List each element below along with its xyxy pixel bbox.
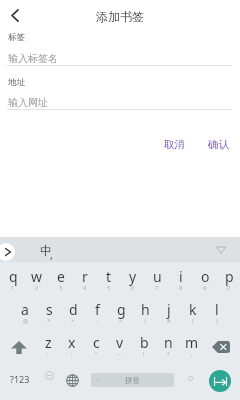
staticText: b: [140, 333, 149, 352]
staticText: x: [68, 333, 76, 352]
staticText: c: [93, 333, 100, 352]
button[interactable]: h: [133, 297, 157, 327]
staticText: 7: [155, 284, 159, 291]
staticText: =: [119, 317, 123, 324]
button[interactable]: 确认: [203, 135, 233, 153]
staticText: r: [82, 267, 88, 286]
staticText: 3: [59, 284, 63, 291]
button[interactable]: b: [132, 330, 156, 360]
button[interactable]: 拼音: [91, 373, 174, 387]
button[interactable]: t: [97, 264, 121, 294]
staticText: 地址: [8, 77, 25, 88]
staticText: y: [129, 267, 137, 286]
staticText: u: [153, 267, 162, 286]
button[interactable]: z: [36, 330, 60, 360]
staticText: ): [216, 317, 218, 324]
staticText: h: [141, 300, 150, 319]
button[interactable]: q: [1, 264, 25, 294]
button[interactable]: Period: [182, 366, 199, 392]
staticText: 9: [203, 284, 207, 291]
button[interactable]: Emoji: [41, 366, 57, 392]
staticText: j: [167, 300, 171, 319]
button[interactable]: Shift: [3, 334, 35, 360]
staticText: (: [192, 317, 194, 324]
button[interactable]: 中: [38, 240, 64, 260]
button[interactable]: m: [180, 330, 204, 360]
button[interactable]: a: [13, 297, 37, 327]
staticText: ~: [118, 350, 122, 357]
staticText: 1: [11, 284, 15, 291]
staticText: e: [57, 267, 65, 286]
staticText: 中: [40, 243, 52, 258]
staticText: @: [23, 317, 28, 324]
staticText: ,: [191, 350, 193, 357]
staticText: 6: [131, 284, 135, 291]
staticText: z: [45, 333, 52, 352]
button[interactable]: 取消: [159, 135, 189, 153]
staticText: q: [9, 267, 18, 286]
staticText: -: [96, 317, 98, 324]
staticText: l: [215, 300, 219, 319]
staticText: !: [143, 350, 145, 357]
button[interactable]: n: [156, 330, 180, 360]
staticText: ,: [50, 247, 53, 262]
staticText: 添加书签: [0, 9, 240, 24]
staticText: 5: [107, 284, 111, 291]
staticText: p: [225, 267, 234, 286]
button[interactable]: Expand toolbar: [0, 243, 15, 261]
button[interactable]: v: [108, 330, 132, 360]
staticText: 输入网址: [8, 96, 48, 109]
staticText: t: [106, 267, 112, 286]
button[interactable]: g: [109, 297, 133, 327]
button[interactable]: Backspace: [205, 334, 237, 360]
button[interactable]: i: [169, 264, 193, 294]
staticText: +: [71, 317, 75, 324]
button[interactable]: y: [121, 264, 145, 294]
button[interactable]: j: [157, 297, 181, 327]
staticText: /: [144, 317, 147, 324]
staticText: 拼音: [125, 376, 140, 385]
button[interactable]: k: [181, 297, 205, 327]
staticText: g: [117, 300, 126, 319]
staticText: 8: [179, 284, 183, 291]
staticText: 0: [227, 284, 231, 291]
staticText: 2: [35, 284, 39, 291]
staticText: i: [179, 267, 183, 286]
staticText: o: [201, 267, 210, 286]
button[interactable]: Enter: [209, 370, 231, 392]
staticText: f: [95, 300, 100, 319]
button[interactable]: Change language: [63, 366, 82, 392]
staticText: ": [95, 350, 98, 357]
staticText: 标签: [8, 32, 25, 43]
staticText: k: [189, 300, 197, 319]
button[interactable]: Back: [2, 2, 28, 28]
button[interactable]: w: [25, 264, 49, 294]
staticText: a: [21, 300, 29, 319]
button[interactable]: s: [37, 297, 61, 327]
staticText: d: [69, 300, 78, 319]
button[interactable]: x: [60, 330, 84, 360]
staticText: 4: [83, 284, 87, 291]
staticText: s: [46, 300, 53, 319]
button[interactable]: Hide keyboard: [213, 242, 228, 257]
button[interactable]: e: [49, 264, 73, 294]
staticText: m: [185, 333, 199, 352]
button[interactable]: l: [205, 297, 229, 327]
staticText: 输入标签名: [8, 52, 58, 65]
button[interactable]: ?123: [4, 366, 36, 392]
staticText: ;: [71, 350, 73, 357]
button[interactable]: r: [73, 264, 97, 294]
button[interactable]: p: [217, 264, 240, 294]
staticText: ?123: [10, 373, 30, 385]
staticText: #: [167, 317, 171, 324]
button[interactable]: f: [85, 297, 109, 327]
staticText: v: [116, 333, 124, 352]
button[interactable]: c: [84, 330, 108, 360]
staticText: n: [164, 333, 173, 352]
staticText: :: [47, 350, 49, 357]
button[interactable]: o: [193, 264, 217, 294]
button[interactable]: d: [61, 297, 85, 327]
staticText: ?: [167, 350, 170, 357]
button[interactable]: u: [145, 264, 169, 294]
staticText: w: [31, 267, 43, 286]
